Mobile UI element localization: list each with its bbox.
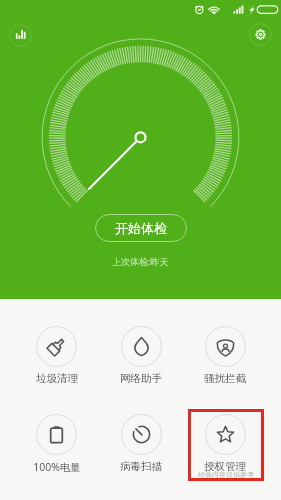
button[interactable]: 授权管理: [183, 414, 267, 473]
button[interactable]: 病毒扫描: [99, 414, 183, 473]
button[interactable]: 网络助手: [99, 326, 183, 385]
staticText: 上次体检:昨天: [112, 255, 169, 267]
staticText: 垃圾清理: [36, 372, 78, 385]
button[interactable]: Settings: [249, 23, 272, 46]
button[interactable]: Statistics: [9, 24, 32, 47]
staticText: 病毒扫描: [120, 460, 162, 473]
staticText: 网络助手: [120, 372, 162, 385]
staticText: 骚扰拦截: [204, 372, 246, 385]
button[interactable]: 垃圾清理: [14, 326, 99, 385]
staticText: 开始体检: [115, 220, 167, 236]
button[interactable]: 骚扰拦截: [183, 326, 267, 385]
button[interactable]: 100%电量: [14, 414, 99, 474]
staticText: 授权管理: [204, 460, 246, 473]
staticText: 100%电量: [33, 460, 81, 474]
button[interactable]: 开始体检: [95, 214, 187, 242]
staticText: 经验内容仅供参考: [198, 470, 254, 479]
